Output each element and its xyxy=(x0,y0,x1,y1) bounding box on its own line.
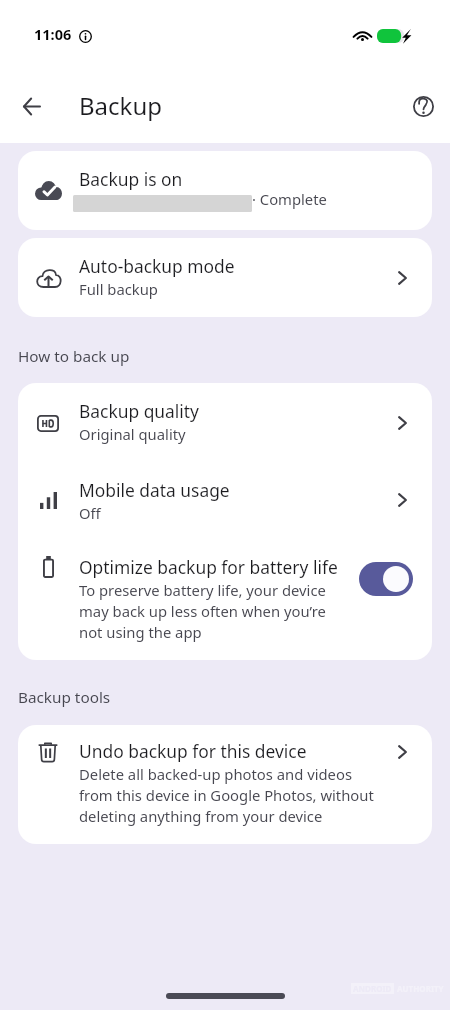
staticText: Original quality xyxy=(79,424,186,444)
staticText: To preserve battery life, your device ma… xyxy=(79,580,341,642)
button[interactable] xyxy=(18,238,432,317)
button[interactable] xyxy=(18,151,432,230)
button[interactable]: Optimize backup for battery life xyxy=(359,562,413,596)
staticText: How to back up xyxy=(18,346,130,367)
button[interactable] xyxy=(18,383,432,461)
staticText: Off xyxy=(79,503,101,523)
staticText: Backup is on xyxy=(79,167,183,191)
staticText: Backup quality xyxy=(79,399,199,423)
staticText: Delete all backed-up photos and videos f… xyxy=(79,764,379,826)
staticText: Undo backup for this device xyxy=(79,739,307,763)
staticText: Mobile data usage xyxy=(79,478,230,502)
staticText: 11:06 xyxy=(34,24,72,44)
button[interactable] xyxy=(18,725,432,844)
staticText: Backup xyxy=(79,89,162,122)
button[interactable] xyxy=(18,461,432,538)
staticText: Auto-backup mode xyxy=(79,254,235,278)
staticText: Optimize backup for battery life xyxy=(79,555,338,579)
staticText: Backup tools xyxy=(18,687,111,708)
staticText: Full backup xyxy=(79,279,158,299)
button[interactable]: Back xyxy=(9,84,53,128)
button[interactable] xyxy=(18,538,432,660)
staticText: · Complete xyxy=(252,189,327,209)
button[interactable]: Help xyxy=(401,84,445,128)
